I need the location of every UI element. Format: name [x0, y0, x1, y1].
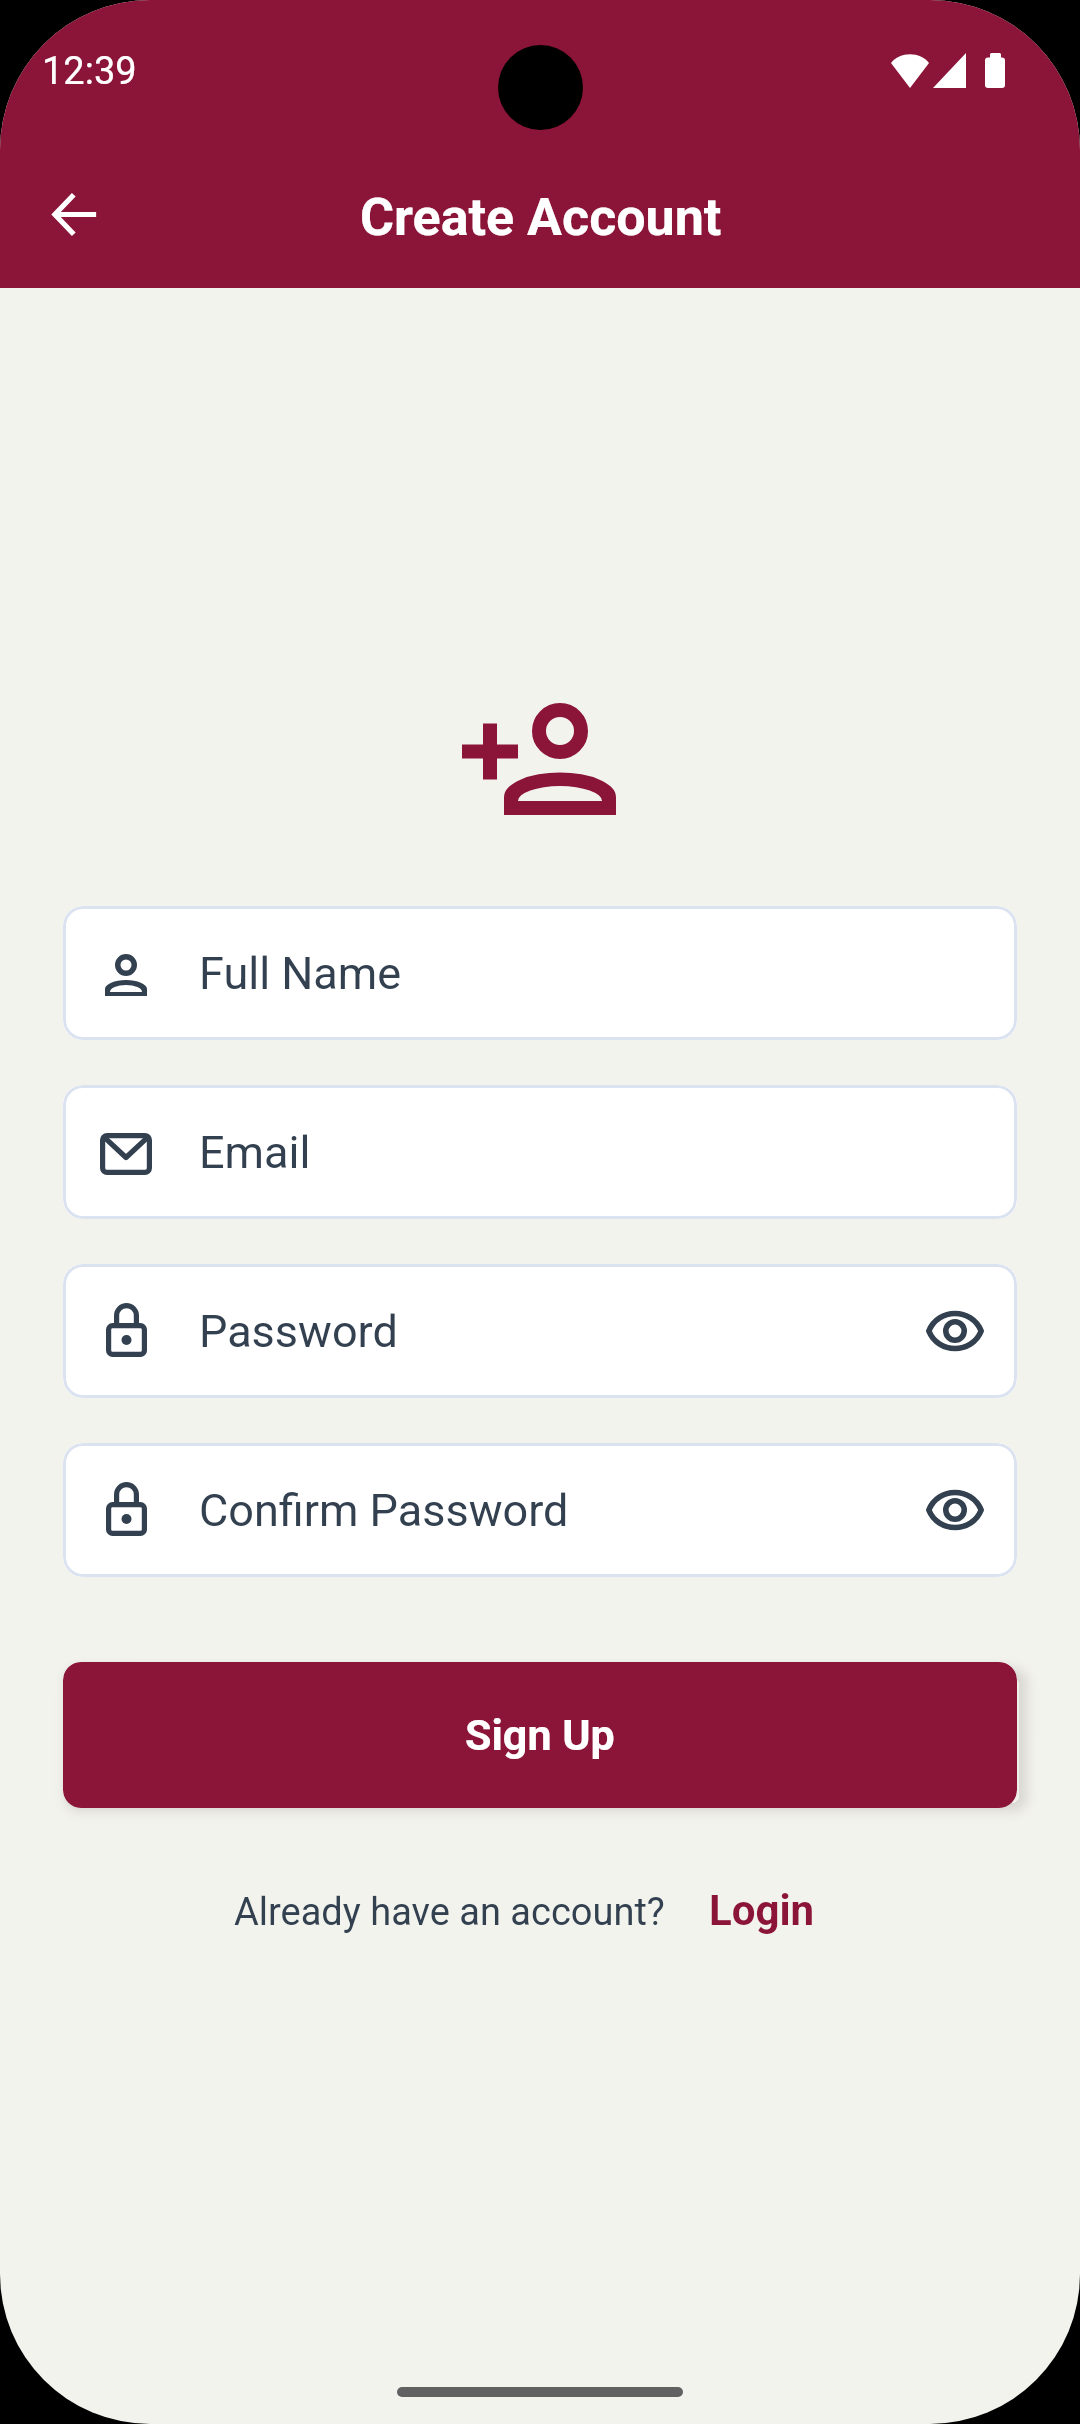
- staticText: Create Account: [360, 187, 722, 248]
- button[interactable]: Full Name: [63, 906, 1017, 1040]
- button[interactable]: Confirm Password: [63, 1443, 1017, 1577]
- staticText: 12:39: [42, 49, 137, 94]
- button[interactable]: Login: [709, 1886, 815, 1935]
- staticText: Full Name: [199, 947, 402, 1000]
- button[interactable]: Sign Up: [63, 1662, 1017, 1808]
- button[interactable]: Show password: [893, 1264, 1017, 1398]
- button[interactable]: Email: [63, 1085, 1017, 1219]
- staticText: Already have an account?: [234, 1890, 665, 1935]
- button[interactable]: Password: [63, 1264, 1017, 1398]
- staticText: Confirm Password: [199, 1484, 569, 1537]
- button[interactable]: Back: [31, 170, 119, 258]
- staticText: Login: [709, 1886, 815, 1935]
- staticText: Sign Up: [465, 1710, 615, 1760]
- staticText: Password: [199, 1305, 398, 1358]
- staticText: Email: [199, 1126, 311, 1179]
- button[interactable]: Show password: [893, 1443, 1017, 1577]
